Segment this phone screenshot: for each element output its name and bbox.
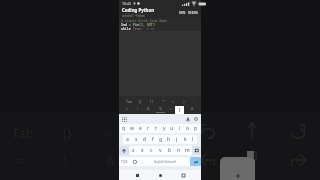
staticText: ( (139, 23, 141, 27)
staticText: while (121, 27, 131, 31)
staticText: l (192, 136, 194, 143)
button[interactable]: : (192, 99, 195, 104)
button[interactable]: DEBUG (187, 9, 199, 17)
button[interactable]: p (192, 124, 200, 133)
staticText: RUN (179, 11, 186, 15)
staticText: {} (139, 99, 142, 104)
button[interactable]: n (174, 146, 183, 155)
button[interactable]: o (184, 124, 192, 133)
staticText: = (17, 152, 25, 170)
button[interactable]: g (157, 135, 165, 144)
button[interactable]: j (173, 135, 181, 144)
button[interactable]: English (Ireland) (145, 157, 184, 166)
button[interactable]: < (171, 99, 176, 104)
button[interactable]: e (136, 124, 144, 133)
button[interactable]: Emoji (130, 157, 140, 166)
button[interactable]: % (158, 106, 163, 111)
button[interactable]: \ (136, 106, 140, 111)
button[interactable]: Home (155, 170, 165, 180)
button[interactable]: a (123, 135, 132, 144)
staticText: OUT (147, 23, 153, 27)
staticText: b (168, 147, 172, 154)
button[interactable]: > (182, 99, 187, 104)
button[interactable]: + (169, 106, 174, 111)
button[interactable]: h (165, 135, 173, 144)
button[interactable]: z (129, 146, 138, 155)
button[interactable]: r (144, 124, 152, 133)
staticText: Tab (12, 124, 34, 142)
staticText: # (191, 106, 194, 111)
button[interactable]: . (184, 157, 190, 166)
staticText: z (132, 147, 135, 154)
staticText: "" (162, 99, 165, 104)
staticText: q (122, 125, 126, 132)
button[interactable]: Voice input (185, 116, 191, 122)
button[interactable]: d (141, 135, 149, 144)
button[interactable]: t (152, 124, 160, 133)
button[interactable]: Tab (125, 99, 133, 104)
button[interactable]: w (128, 124, 136, 133)
button[interactable]: Settings (193, 116, 199, 122)
button[interactable]: k (181, 135, 189, 144)
staticText: p (194, 125, 198, 132)
button[interactable]: RUN (178, 9, 187, 17)
button[interactable]: l (189, 135, 197, 144)
staticText: \ (137, 106, 139, 111)
staticText: 2 (141, 23, 143, 27)
button[interactable]: "" (161, 99, 166, 104)
staticText: English (Ireland) (154, 160, 176, 164)
staticText: o (186, 125, 190, 132)
staticText: {} (62, 124, 72, 142)
staticText: led (121, 23, 127, 27)
staticText: h (167, 136, 171, 143)
button[interactable]: v (156, 146, 165, 155)
button[interactable]: {} (138, 99, 143, 104)
staticText: x (141, 147, 144, 154)
button[interactable]: s (132, 135, 141, 144)
staticText: k (184, 136, 187, 143)
button[interactable]: # (190, 106, 195, 111)
button[interactable]: c (147, 146, 156, 155)
button[interactable]: Apps (121, 116, 127, 122)
button[interactable]: y (160, 124, 168, 133)
staticText: g (159, 136, 163, 143)
staticText: 10:42 (122, 1, 131, 6)
button[interactable]: - (180, 106, 184, 111)
button[interactable]: Shift (119, 146, 129, 155)
button[interactable]: i (176, 124, 184, 133)
staticText: v (159, 147, 162, 154)
button[interactable]: q (120, 124, 128, 133)
staticText: % (159, 106, 162, 111)
button[interactable]: = (125, 106, 130, 111)
staticText: Tab (126, 99, 132, 104)
staticText: c (150, 147, 153, 154)
button[interactable]: ( ) (149, 99, 155, 104)
staticText: r (147, 125, 150, 132)
button[interactable]: ?123 (119, 157, 130, 166)
button[interactable]: Recents (178, 170, 188, 180)
button[interactable]: m (183, 146, 192, 155)
staticText: < (172, 99, 175, 104)
button[interactable]: Back (132, 170, 142, 180)
button[interactable]: b (165, 146, 174, 155)
staticText: u (170, 125, 174, 132)
button[interactable]: u (168, 124, 176, 133)
staticText: & (106, 151, 116, 169)
button[interactable]: f (149, 135, 157, 144)
button[interactable]: x (138, 146, 147, 155)
button[interactable]: & (146, 106, 151, 111)
button[interactable]: Backspace (192, 146, 201, 155)
staticText: e (139, 125, 142, 132)
staticText: = (127, 23, 133, 27)
staticText: d (143, 136, 147, 143)
button[interactable]: Enter (190, 157, 201, 166)
staticText: a (126, 136, 129, 143)
staticText: = (126, 106, 129, 111)
button[interactable]: , (140, 157, 145, 166)
staticText: DEBUG (188, 11, 198, 15)
staticText: : (193, 99, 194, 104)
